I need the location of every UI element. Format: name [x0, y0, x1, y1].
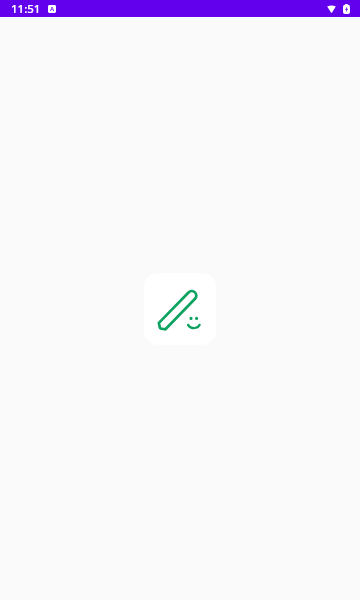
staticText: 11:51 — [11, 1, 41, 17]
button[interactable]: App logo — [144, 273, 216, 345]
staticText: A — [50, 5, 55, 13]
